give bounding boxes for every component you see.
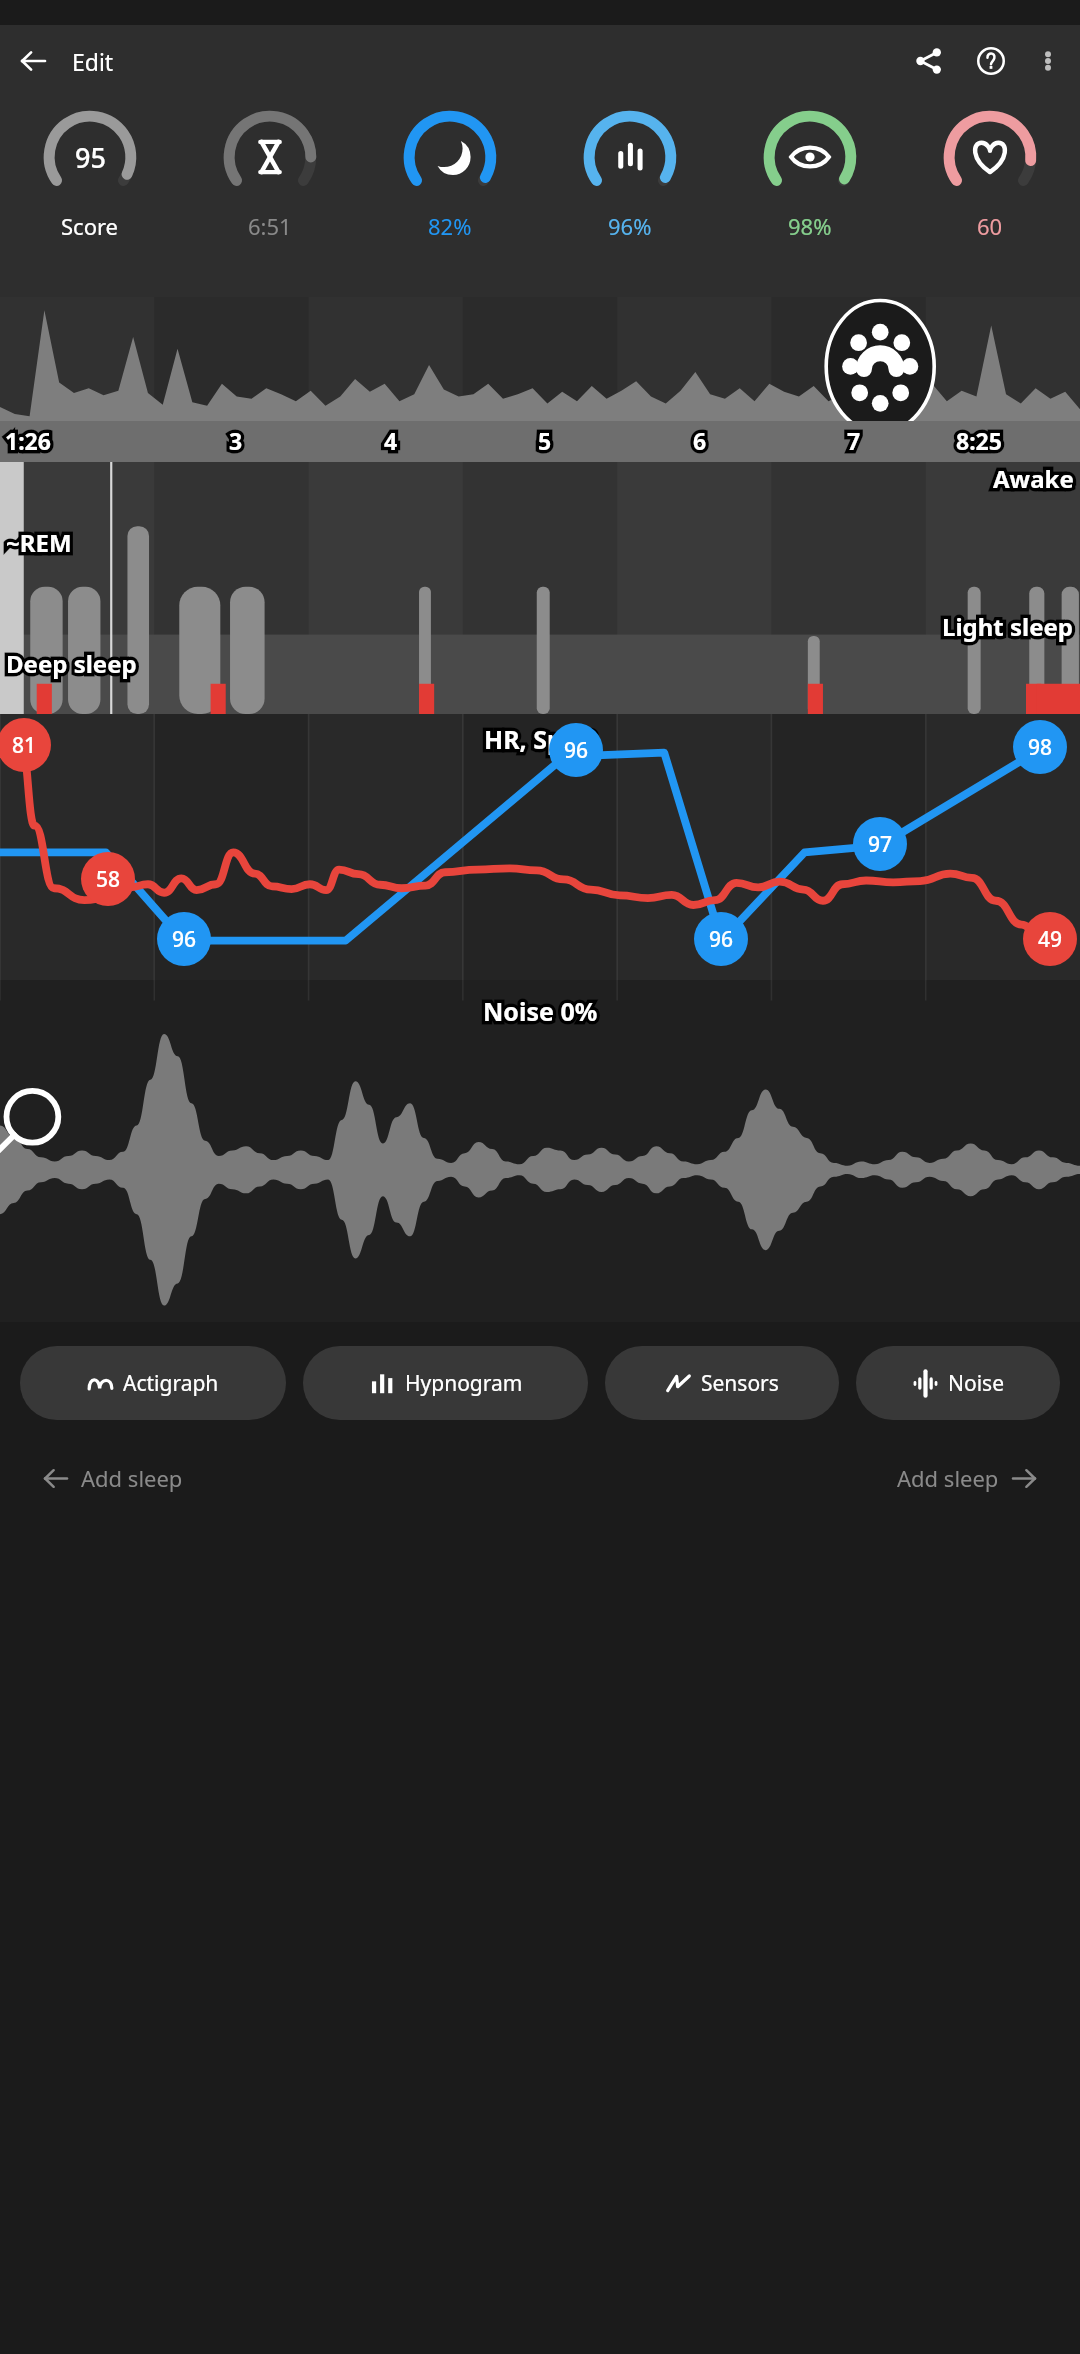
button[interactable]: 6:51 (180, 97, 360, 297)
staticText: 3 (229, 425, 243, 456)
button[interactable]: 98% (720, 97, 900, 297)
button[interactable]: Share (904, 36, 954, 86)
staticText: 5 (538, 425, 552, 456)
staticText: Hypnogram (405, 1369, 523, 1398)
staticText: 98% (788, 211, 832, 241)
staticText: 4 (384, 425, 398, 456)
staticText: HR, SpO2 (484, 722, 597, 756)
button[interactable]: HR, SpO2 (0, 714, 1080, 980)
button[interactable]: More options (1024, 37, 1072, 85)
button[interactable]: Actigraph (20, 1346, 286, 1420)
button[interactable]: Hypnogram (303, 1346, 588, 1420)
staticText: 98 (1028, 733, 1053, 762)
staticText: Score (61, 211, 119, 241)
staticText: 49 (1038, 925, 1063, 954)
staticText: 96 (709, 925, 734, 954)
staticText: 3 (229, 425, 243, 456)
button[interactable]: 60 (900, 97, 1080, 297)
button[interactable]: Noise (856, 1346, 1060, 1420)
staticText: Actigraph (123, 1369, 219, 1398)
staticText: Sensors (701, 1369, 779, 1398)
button[interactable]: 95 (0, 97, 180, 297)
staticText: Awake (993, 462, 1074, 495)
staticText: ~REM (6, 526, 72, 559)
staticText: 6 (693, 425, 707, 456)
button[interactable]: 82% (360, 97, 540, 297)
staticText: 95 (75, 139, 106, 176)
staticText: 58 (96, 865, 121, 894)
button[interactable]: Back (8, 36, 58, 86)
staticText: 8:25 (956, 425, 1002, 456)
button[interactable]: Noise 0% (0, 980, 1080, 1322)
staticText: Light sleep (942, 610, 1074, 643)
button[interactable]: 96% (540, 97, 720, 297)
staticText: Noise (948, 1369, 1004, 1398)
staticText: 96 (172, 925, 197, 954)
button[interactable]: Help (966, 36, 1016, 86)
staticText: 7 (847, 425, 861, 456)
staticText: Deep sleep (6, 647, 137, 680)
staticText: 1:26 (5, 425, 51, 456)
button[interactable]: Add sleep (889, 1455, 1044, 1501)
staticText: 96% (608, 211, 652, 241)
staticText: ~REM (6, 526, 72, 559)
button[interactable]: Awake (0, 462, 1080, 714)
staticText: 6 (693, 425, 707, 456)
staticText: 96 (564, 736, 589, 765)
staticText: Awake (993, 462, 1074, 495)
staticText: Deep sleep (6, 647, 137, 680)
staticText: 4 (384, 425, 398, 456)
staticText: 82% (428, 211, 472, 241)
staticText: Add sleep (897, 1463, 999, 1493)
staticText: 81 (12, 731, 37, 760)
staticText: Noise 0% (483, 994, 598, 1028)
button[interactable]: 1:26 (0, 297, 1080, 462)
staticText: 6:51 (248, 211, 292, 241)
button[interactable]: Sensors (605, 1346, 839, 1420)
staticText: 8:25 (956, 425, 1002, 456)
staticText: HR, SpO2 (484, 722, 597, 756)
staticText: Edit (72, 46, 114, 77)
staticText: Noise 0% (483, 994, 598, 1028)
staticText: 1:26 (5, 425, 51, 456)
button[interactable]: Add sleep (36, 1455, 191, 1501)
staticText: Light sleep (942, 610, 1074, 643)
staticText: 7 (847, 425, 861, 456)
staticText: 5 (538, 425, 552, 456)
staticText: 60 (977, 211, 1003, 241)
staticText: Add sleep (81, 1463, 183, 1493)
staticText: 97 (868, 830, 893, 859)
